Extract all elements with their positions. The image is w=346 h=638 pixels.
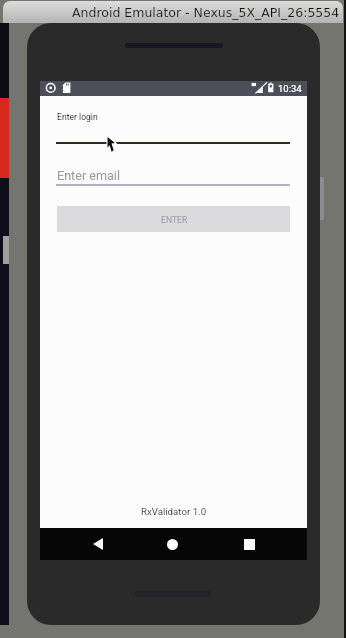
staticText: Enter email: [57, 168, 120, 183]
button[interactable]: Back: [76, 528, 120, 560]
staticText: ENTER: [161, 215, 188, 225]
button[interactable]: Home: [150, 528, 194, 560]
staticText: 10:34: [278, 83, 302, 94]
staticText: Enter login: [57, 112, 98, 122]
button[interactable]: Recent apps: [227, 528, 271, 560]
staticText: RxValidator 1.0: [40, 506, 307, 517]
staticText: Android Emulator - Nexus_5X_API_26:5554: [72, 5, 340, 20]
button[interactable]: ENTER: [57, 206, 290, 232]
